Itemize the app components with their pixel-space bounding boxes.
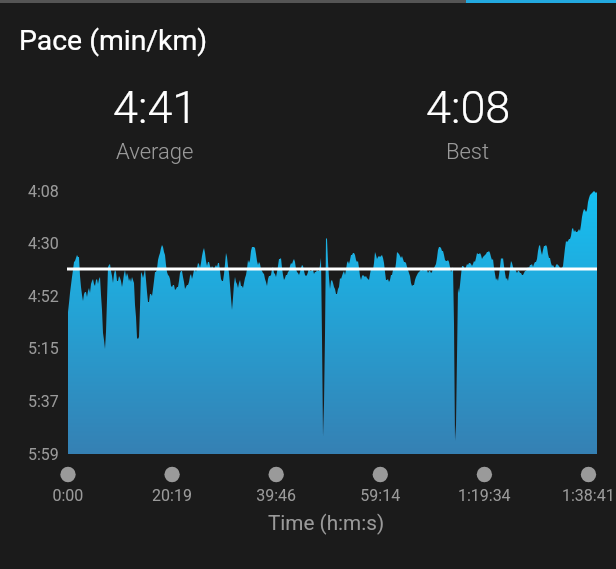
staticText: Best	[446, 139, 490, 165]
button[interactable]: 4:08	[368, 81, 568, 160]
staticText: Pace (min/km)	[19, 24, 208, 57]
staticText: 4:08	[426, 81, 511, 134]
other: Pace over time chart	[0, 0, 616, 569]
staticText: Average	[116, 139, 194, 165]
button[interactable]: 4:41	[55, 81, 255, 160]
staticText: 4:41	[113, 81, 198, 134]
